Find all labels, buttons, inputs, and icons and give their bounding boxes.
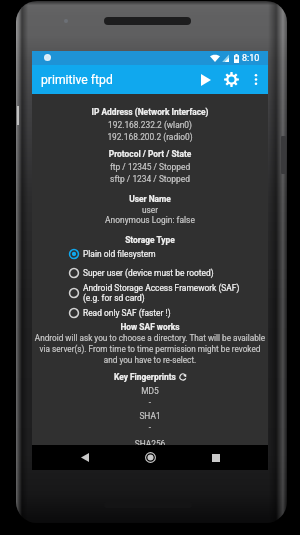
staticText: Super user (device must be rooted) xyxy=(83,268,214,278)
staticText: SHA256 xyxy=(32,439,268,449)
staticText: Key Fingerprints xyxy=(114,372,176,382)
button[interactable]: Start server xyxy=(194,67,217,92)
staticText: Read only SAF (faster !) xyxy=(83,308,171,318)
button[interactable]: Settings xyxy=(219,66,243,93)
staticText: Protocol / Port / State xyxy=(32,149,268,159)
staticText: 8:10 xyxy=(242,53,260,64)
button[interactable]: Plain old filesystem xyxy=(68,246,268,262)
staticText: User Name xyxy=(32,194,268,204)
staticText: - xyxy=(32,397,268,407)
staticText: Anonymous Login: false xyxy=(32,215,268,225)
button[interactable]: Key Fingerprints xyxy=(114,372,187,382)
staticText: SHA1 xyxy=(32,411,268,421)
staticText: Android Storage Access Framework (SAF) xyxy=(83,283,240,293)
staticText: 192.168.200.2 (radio0) xyxy=(32,132,268,142)
staticText: How SAF works xyxy=(32,322,268,332)
staticText: primitive ftpd xyxy=(41,73,113,87)
button[interactable]: Recents xyxy=(203,445,229,470)
button[interactable]: More options xyxy=(247,67,265,92)
staticText: user xyxy=(32,205,268,215)
button[interactable]: Back xyxy=(72,445,98,470)
button[interactable]: Read only SAF (faster !) xyxy=(68,305,268,321)
staticText: sftp / 1234 / Stopped xyxy=(32,174,268,184)
staticText: MD5 xyxy=(32,386,268,396)
staticText: ftp / 12345 / Stopped xyxy=(32,162,268,172)
staticText: Storage Type xyxy=(32,235,268,245)
button[interactable]: Super user (device must be rooted) xyxy=(68,265,268,281)
staticText: Android will ask you to choose a directo… xyxy=(32,333,268,365)
button[interactable]: Android Storage Access Framework (SAF) xyxy=(68,282,268,304)
staticText: - xyxy=(32,422,268,432)
staticText: (e.g. for sd card) xyxy=(83,293,145,303)
staticText: 192.168.232.2 (wlan0) xyxy=(32,120,268,130)
staticText: Plain old filesystem xyxy=(83,249,156,259)
button[interactable]: Home xyxy=(137,445,163,470)
staticText: IP Address (Network Interface) xyxy=(32,107,268,117)
